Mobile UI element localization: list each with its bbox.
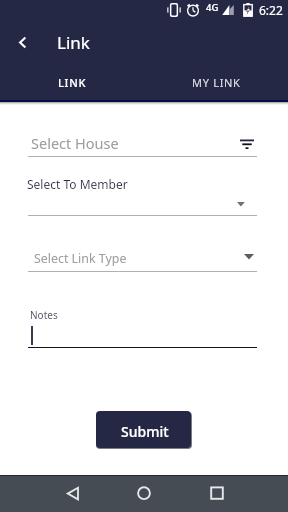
staticText: LINK (58, 75, 87, 90)
staticText: Notes (30, 308, 58, 322)
staticText: 4G (206, 1, 219, 14)
button[interactable]: Home (134, 484, 154, 504)
staticText: Select Link Type (34, 250, 127, 267)
button[interactable]: MY LINK (144, 65, 288, 100)
button[interactable]: LINK (0, 65, 144, 100)
staticText: 6:22 (259, 2, 283, 18)
staticText: MY LINK (192, 75, 241, 90)
button[interactable]: Back (9, 29, 37, 57)
button[interactable]: Submit (96, 411, 191, 448)
staticText: Link (57, 31, 90, 54)
staticText: Submit (121, 422, 169, 441)
button[interactable]: Back (62, 484, 82, 504)
button[interactable]: Filter (236, 131, 258, 153)
button[interactable]: Recents (207, 484, 227, 504)
staticText: Select To Member (27, 176, 128, 192)
staticText: Select House (31, 133, 119, 153)
